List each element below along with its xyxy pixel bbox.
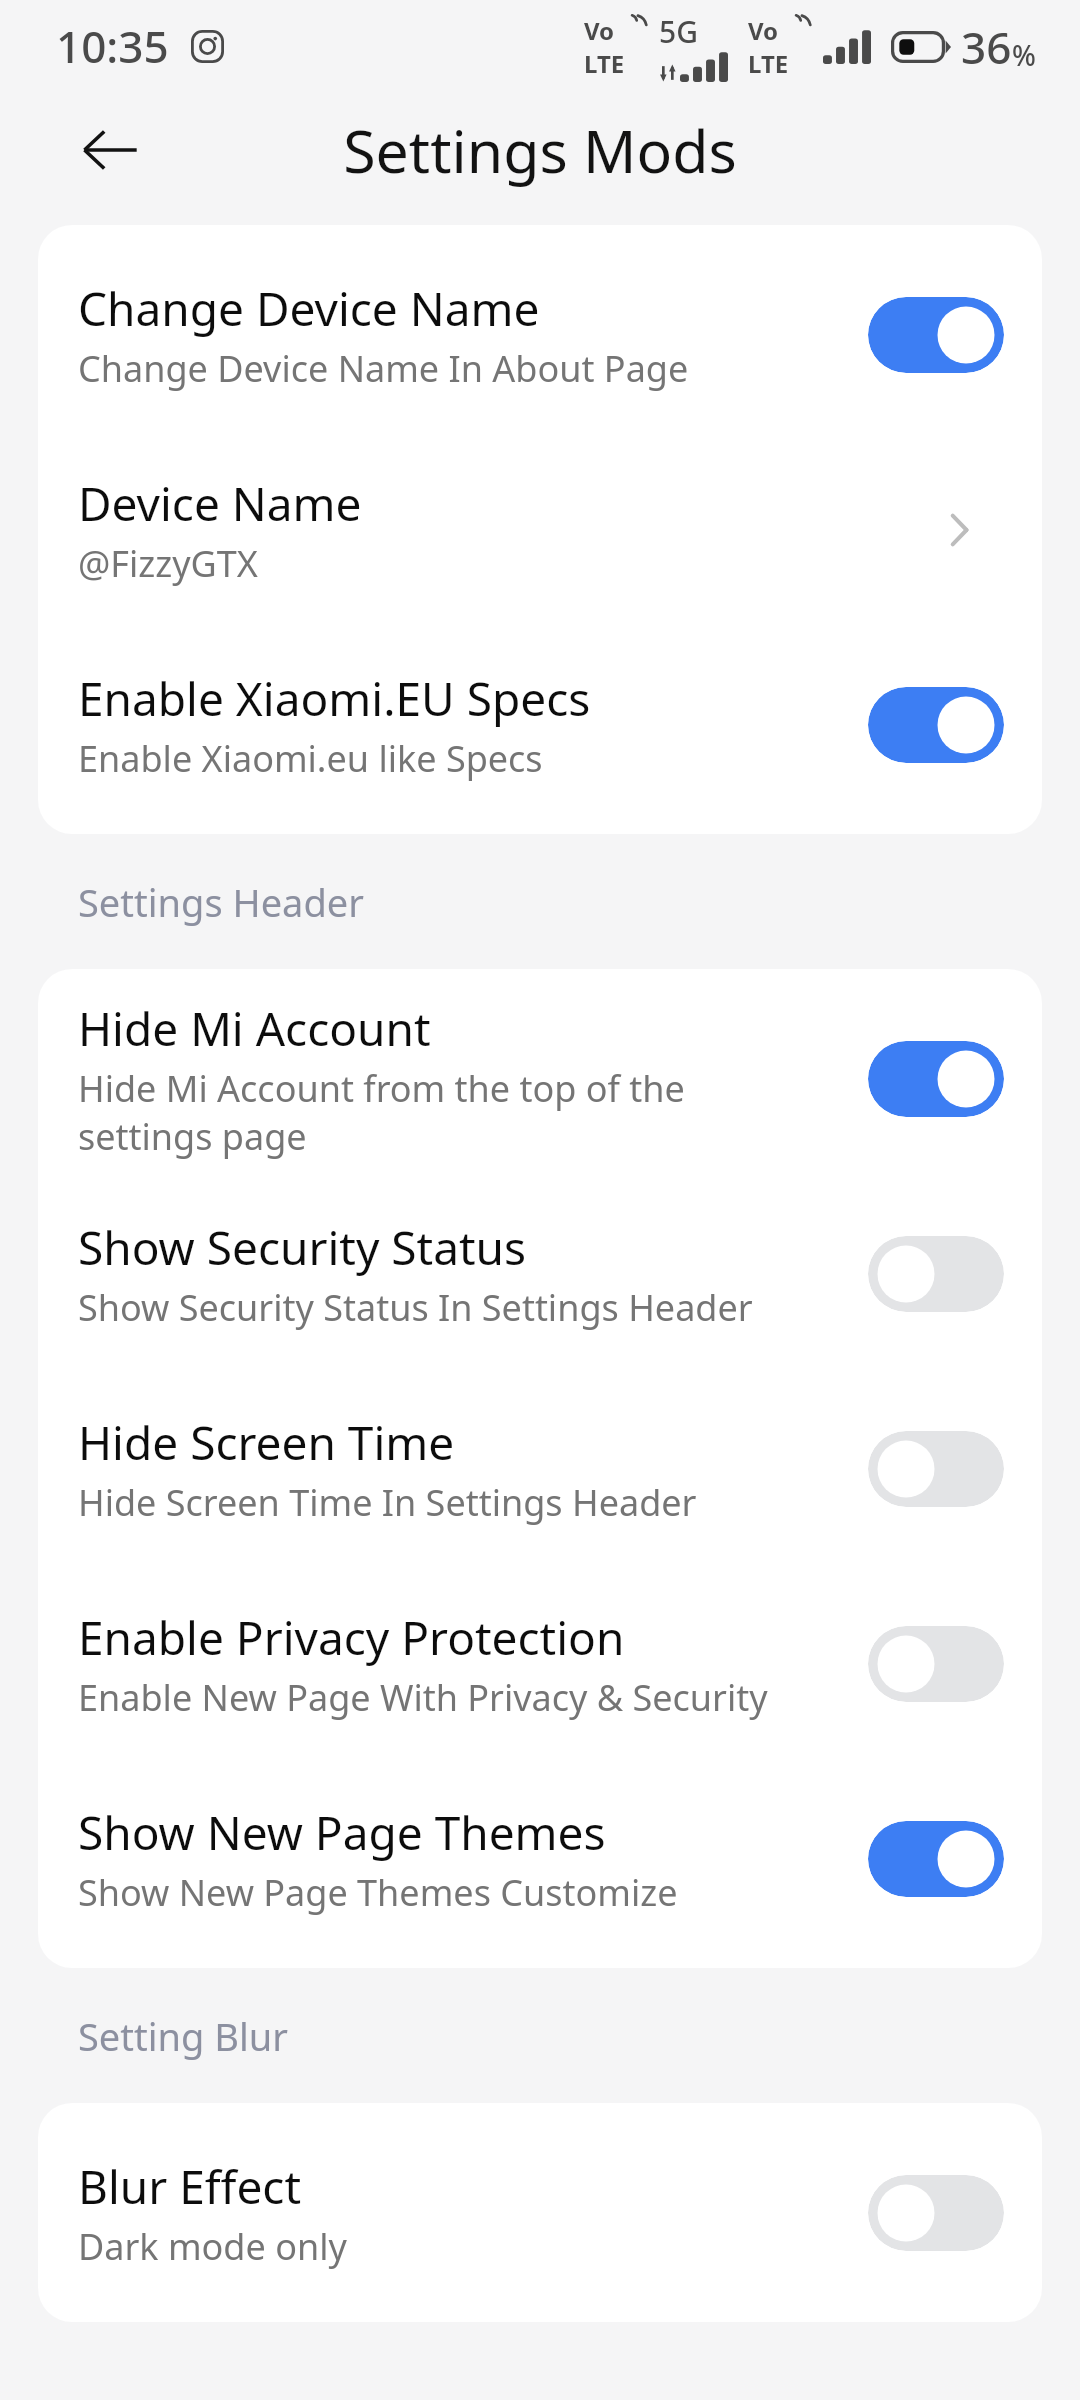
staticText: Settings Header — [78, 876, 364, 928]
button[interactable]: Switch off — [868, 2175, 1004, 2251]
staticText: @FizzyGTX — [78, 539, 258, 588]
staticText: % — [1012, 36, 1036, 74]
staticText: Vo — [584, 14, 615, 47]
staticText: Hide Mi Account from the top of the sett… — [78, 1064, 718, 1160]
staticText: LTE — [584, 47, 625, 80]
button[interactable]: Switch on — [868, 687, 1004, 763]
button[interactable]: Change Device Name — [38, 237, 1042, 432]
staticText: 10:35 — [56, 16, 169, 76]
button[interactable]: Switch off — [868, 1626, 1004, 1702]
button[interactable]: Switch on — [868, 297, 1004, 373]
button[interactable]: Device Name — [38, 432, 1042, 627]
staticText: Dark mode only — [78, 2222, 347, 2271]
staticText: 5G — [659, 11, 698, 52]
staticText: Vo — [748, 14, 779, 47]
staticText: Show New Page Themes — [78, 1801, 606, 1864]
button[interactable]: Switch off — [868, 1431, 1004, 1507]
staticText: Change Device Name In About Page — [78, 344, 689, 393]
staticText: Setting Blur — [78, 2010, 288, 2062]
button[interactable]: Hide Screen Time — [38, 1371, 1042, 1566]
staticText: Change Device Name — [78, 277, 540, 340]
staticText: 36 — [961, 17, 1012, 77]
staticText: Hide Screen Time — [78, 1411, 455, 1474]
staticText: Hide Mi Account — [78, 997, 431, 1060]
button[interactable]: Open Device Name — [914, 485, 1004, 575]
button[interactable]: Show Security Status — [38, 1176, 1042, 1371]
button[interactable]: Enable Privacy Protection — [38, 1566, 1042, 1761]
button[interactable]: Hide Mi Account — [38, 981, 1042, 1176]
staticText: Device Name — [78, 472, 362, 535]
button[interactable]: Switch on — [868, 1821, 1004, 1897]
button[interactable]: Back — [60, 100, 160, 200]
staticText: Enable Xiaomi.eu like Specs — [78, 734, 543, 783]
staticText: LTE — [748, 47, 789, 80]
button[interactable]: Show New Page Themes — [38, 1761, 1042, 1956]
button[interactable]: Switch on — [868, 1041, 1004, 1117]
staticText: Show Security Status — [78, 1216, 527, 1279]
staticText: Enable Privacy Protection — [78, 1606, 625, 1669]
button[interactable]: Enable Xiaomi.EU Specs — [38, 627, 1042, 822]
button[interactable]: Switch off — [868, 1236, 1004, 1312]
staticText: Show New Page Themes Customize — [78, 1868, 678, 1917]
staticText: Enable New Page With Privacy & Security — [78, 1673, 768, 1722]
staticText: Enable Xiaomi.EU Specs — [78, 667, 591, 730]
staticText: Settings Mods — [343, 110, 737, 190]
staticText: Hide Screen Time In Settings Header — [78, 1478, 697, 1527]
staticText: Show Security Status In Settings Header — [78, 1283, 753, 1332]
button[interactable]: Blur Effect — [38, 2115, 1042, 2310]
staticText: Blur Effect — [78, 2155, 302, 2218]
